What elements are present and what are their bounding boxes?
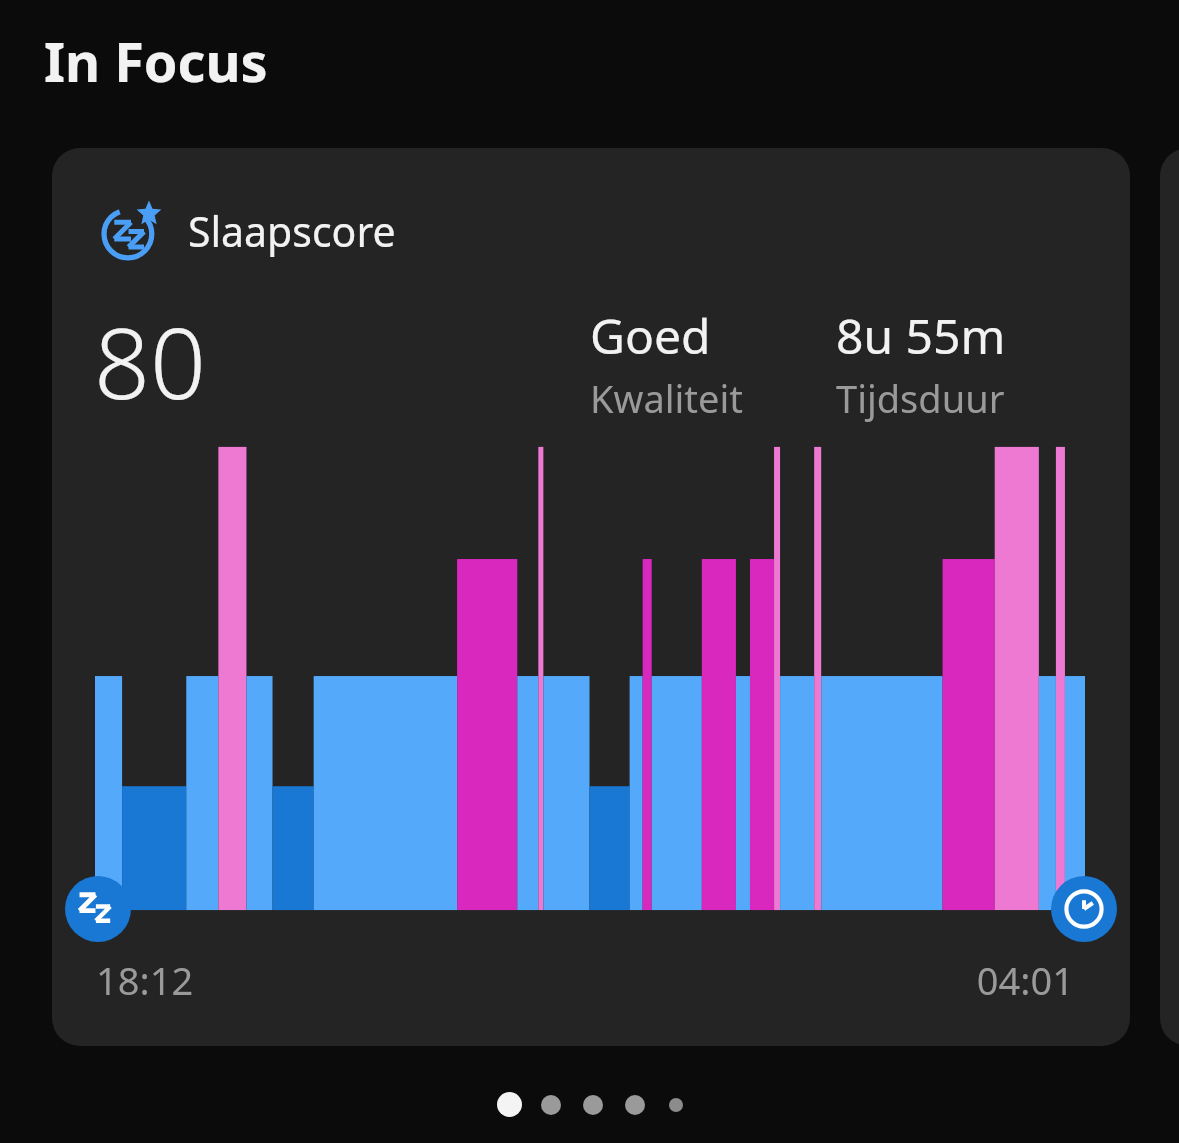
staticText: 80 [94, 294, 206, 427]
staticText: Tijdsduur [836, 372, 1005, 424]
staticText: In Focus [44, 24, 268, 98]
button[interactable]: Wake time [1051, 876, 1117, 942]
staticText: 04:01 [872, 954, 1074, 1006]
staticText: Kwaliteit [590, 372, 743, 424]
button[interactable] [1160, 148, 1179, 1046]
staticText: 8u 55m [836, 303, 1006, 368]
staticText: Goed [590, 303, 711, 368]
button[interactable]: Sleep start [65, 876, 131, 942]
staticText: Slaapscore [188, 203, 396, 259]
other: Sleep score [100, 200, 162, 262]
staticText: 18:12 [96, 954, 194, 1006]
button[interactable]: Sleep score [52, 148, 1130, 1046]
